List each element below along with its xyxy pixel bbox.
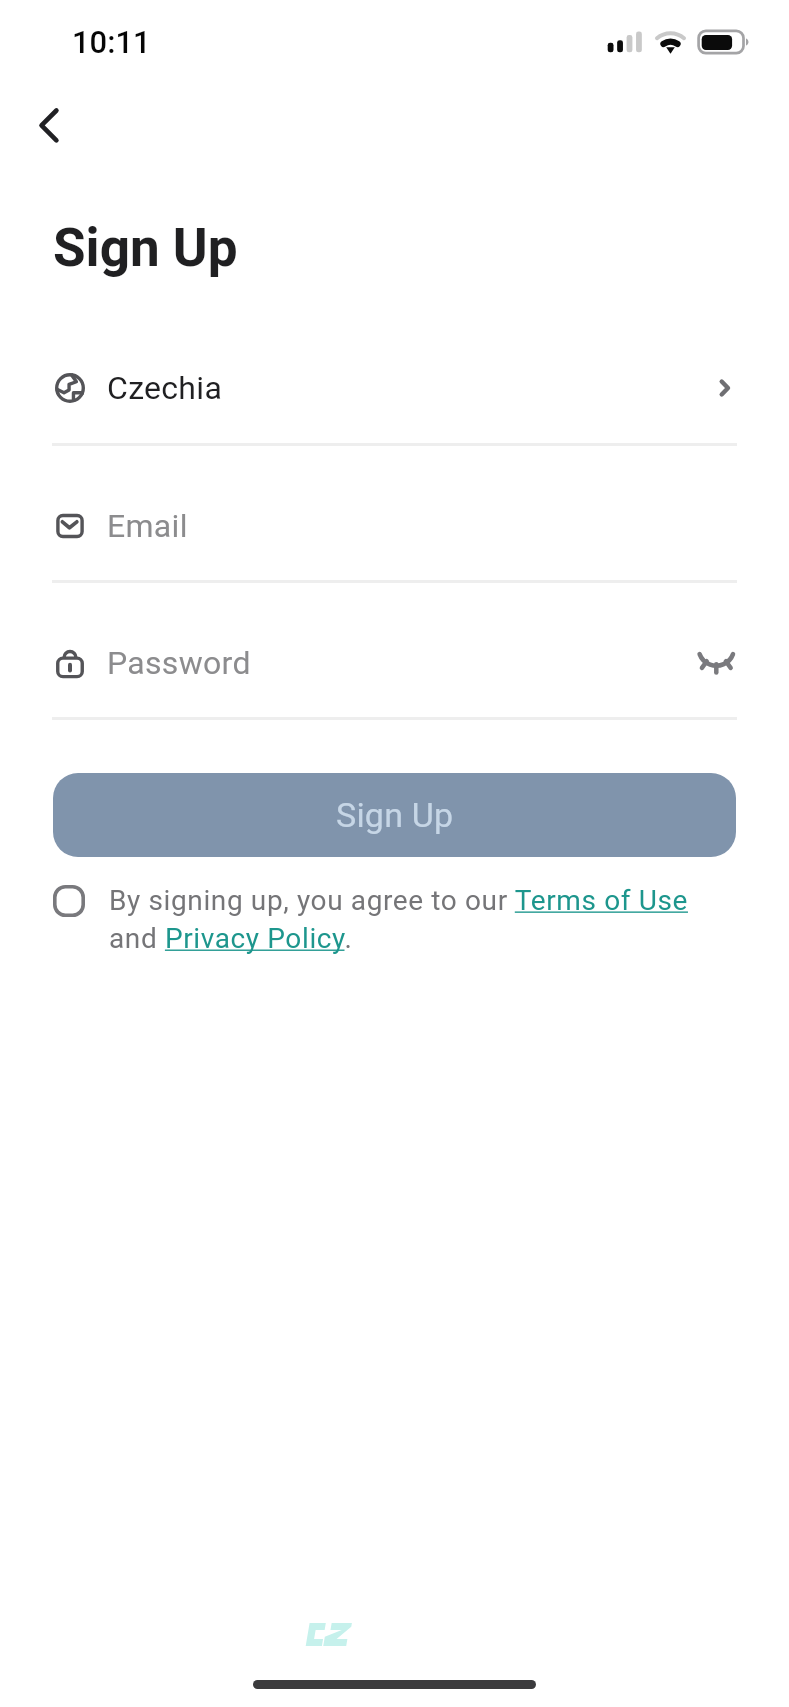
button[interactable]: Email [0, 495, 789, 557]
staticText: By signing up, you agree to our Terms of… [109, 884, 719, 955]
button[interactable]: Agree to terms [45, 877, 92, 924]
button[interactable]: Czechia [0, 357, 789, 419]
staticText: Czechia [107, 369, 223, 407]
button[interactable]: Back [18, 99, 71, 152]
staticText: Email [107, 507, 188, 545]
staticText: Sign Up [53, 217, 238, 279]
staticText: Sign Up [336, 795, 454, 835]
button[interactable]: Sign Up [53, 773, 736, 857]
staticText: Password [107, 644, 251, 682]
staticText: 10:11 [72, 24, 151, 60]
button[interactable]: Password [0, 632, 789, 694]
button[interactable]: Show password [692, 639, 742, 689]
